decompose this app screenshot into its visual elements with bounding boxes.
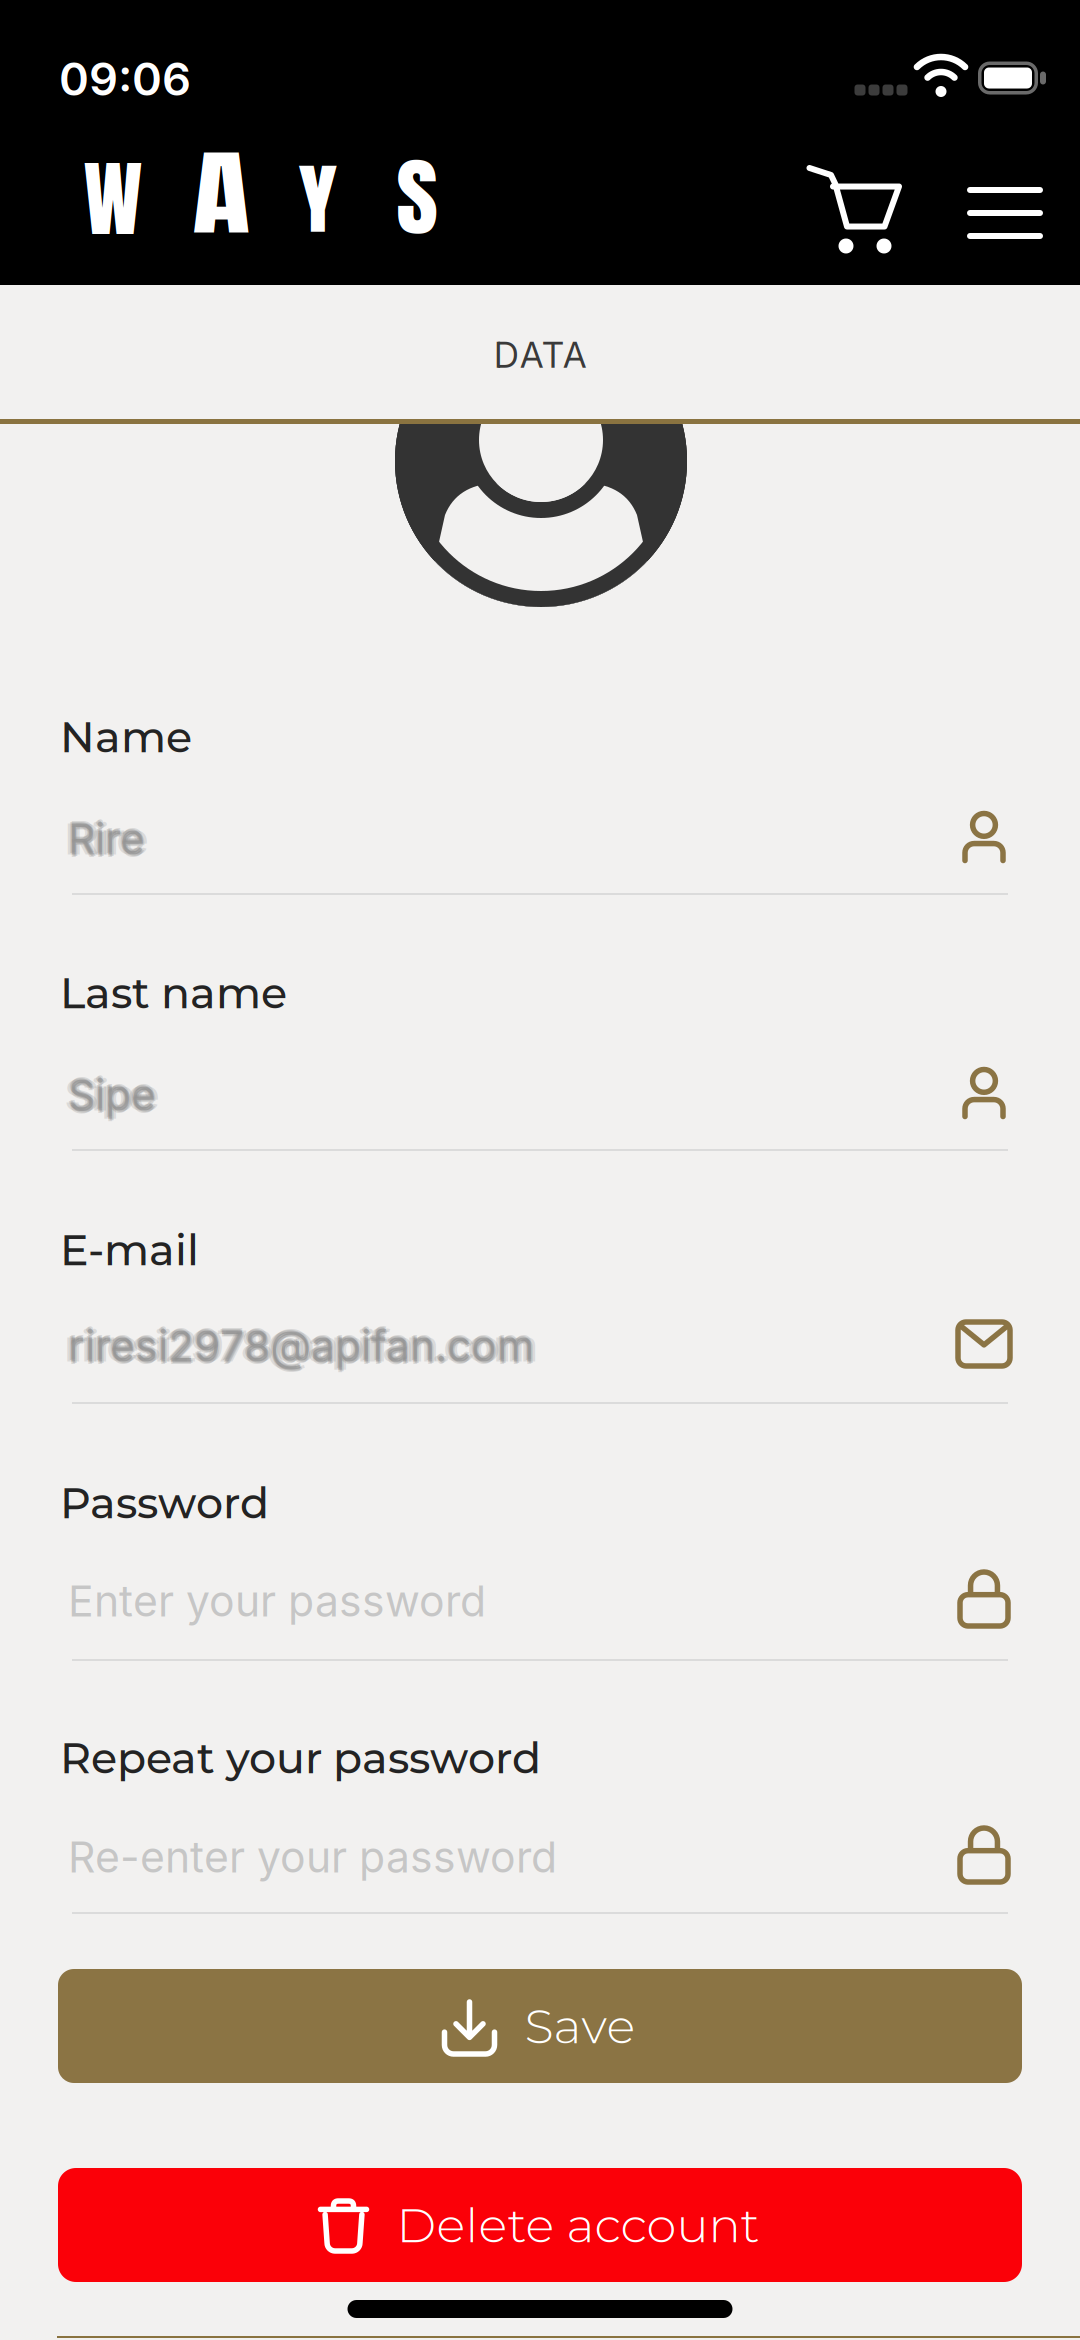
staticText: Rire: [68, 816, 145, 867]
button[interactable]: Delete account: [58, 2168, 1022, 2282]
staticText: Enter your password: [68, 1575, 486, 1627]
staticText: riresi2978@apifan.com: [66, 1319, 532, 1370]
staticText: riresi2978@apifan.com: [72, 1320, 538, 1372]
button[interactable]: Enter your password: [60, 1545, 1010, 1657]
button[interactable]: Cart: [805, 158, 905, 258]
button[interactable]: Rire: [60, 783, 1010, 895]
staticText: Repeat your password: [60, 1732, 541, 1784]
staticText: Password: [60, 1477, 269, 1529]
button[interactable]: DATA: [390, 310, 690, 400]
staticText: Rire: [66, 812, 143, 863]
button[interactable]: Sipe: [60, 1039, 1010, 1151]
staticText: Rire: [69, 815, 146, 866]
staticText: DATA: [494, 334, 586, 376]
staticText: riresi2978@apifan.com: [68, 1320, 534, 1372]
staticText: Sipe: [69, 1071, 157, 1122]
staticText: Sipe: [68, 1072, 156, 1123]
staticText: W: [83, 137, 142, 261]
staticText: S: [397, 133, 436, 261]
staticText: Rire: [68, 813, 145, 865]
staticText: Rire: [72, 813, 149, 865]
button[interactable]: riresi2978@apifan.com: [60, 1290, 1010, 1402]
staticText: riresi2978@apifan.com: [68, 1323, 534, 1374]
staticText: E-mail: [60, 1224, 199, 1276]
staticText: Last name: [60, 967, 287, 1019]
staticText: riresi2978@apifan.com: [64, 1320, 530, 1372]
button[interactable]: Menu: [957, 173, 1053, 253]
staticText: Save: [524, 1997, 635, 2055]
staticText: Sipe: [66, 1068, 154, 1119]
staticText: Sipe: [68, 1067, 156, 1118]
staticText: A: [198, 123, 243, 263]
staticText: Sipe: [72, 1069, 160, 1121]
button[interactable]: Re-enter your password: [60, 1801, 1010, 1913]
staticText: Rire: [68, 811, 145, 862]
staticText: 09:06: [59, 52, 191, 106]
staticText: Sipe: [68, 1069, 156, 1121]
staticText: Delete account: [396, 2196, 759, 2254]
staticText: Name: [60, 711, 192, 763]
staticText: Sipe: [64, 1069, 152, 1121]
button[interactable]: Save: [58, 1969, 1022, 2083]
staticText: Y: [300, 141, 335, 257]
staticText: riresi2978@apifan.com: [68, 1318, 534, 1369]
staticText: Rire: [64, 813, 141, 865]
staticText: riresi2978@apifan.com: [69, 1322, 535, 1373]
staticText: Re-enter your password: [68, 1831, 557, 1883]
